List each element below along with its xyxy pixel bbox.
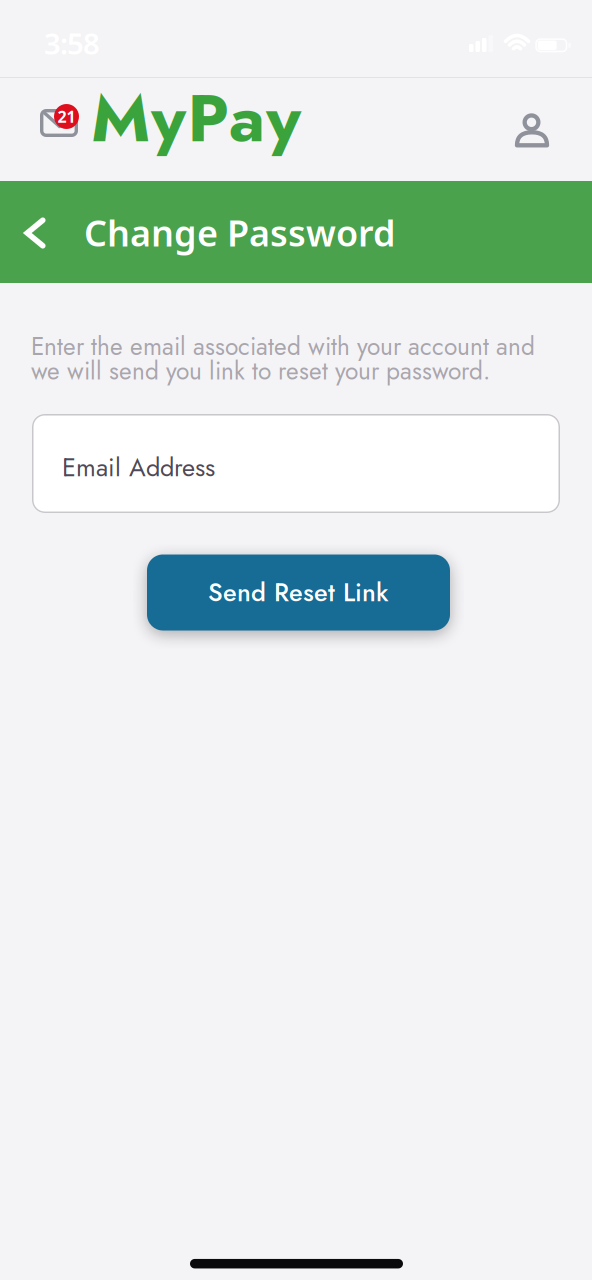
staticText: Change Password	[84, 209, 396, 256]
staticText: MyPay	[91, 70, 301, 166]
staticText: Email Address	[62, 449, 215, 486]
button[interactable]: Email Address	[32, 414, 560, 513]
button[interactable]: Back	[17, 210, 53, 256]
button[interactable]: Profile	[509, 109, 553, 149]
staticText: Enter the email associated with your acc…	[31, 329, 535, 364]
staticText: we will send you link to reset your pass…	[31, 353, 490, 389]
staticText: 3:58	[44, 23, 100, 62]
button[interactable]: Send Reset Link	[147, 554, 450, 630]
button[interactable]: Notifications	[34, 97, 86, 145]
staticText: Send Reset Link	[208, 574, 389, 611]
staticText: 21	[57, 106, 75, 127]
